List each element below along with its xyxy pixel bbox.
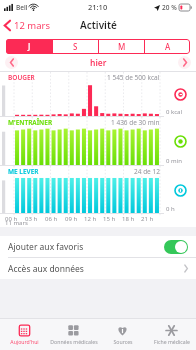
staticText: 15 h [103,215,116,223]
staticText: Accès aux données [8,263,184,275]
button[interactable]: Jour suivant [178,56,191,69]
button[interactable]: Accès aux données [0,258,196,279]
staticText: Bell [16,3,28,12]
staticText: 12 mars [14,19,51,32]
staticText: J [28,41,31,52]
staticText: 09 h [65,215,78,223]
staticText: 1 545 de 500 kcal [107,73,160,82]
button[interactable]: Objectif [174,135,187,148]
staticText: 20 % [162,3,177,12]
staticText: BOUGER [8,73,35,82]
staticText: A [165,41,171,52]
staticText: 06 h [45,215,58,223]
staticText: 0 min [166,157,182,165]
staticText: 0 h [166,205,175,213]
button[interactable]: Objectif [174,88,187,101]
button[interactable]: Sources [98,319,147,350]
staticText: 1 436 de 30 min [111,118,160,127]
staticText: 21 h [141,215,154,223]
staticText: Sources [113,338,133,345]
staticText: 03 h [25,215,38,223]
staticText: Ajouter aux favoris [8,241,164,253]
staticText: Activité [80,18,117,32]
button[interactable]: Jour précédent [5,56,18,69]
staticText: hier [90,57,107,69]
staticText: Aujourd'hui [10,338,39,345]
staticText: Fiche médicale [154,338,190,345]
button[interactable]: Données médicales [49,319,98,350]
staticText: S [73,41,78,52]
button[interactable]: J [6,39,52,54]
button[interactable]: Fiche médicale [147,319,196,350]
staticText: M'ENTRAÎNER [8,118,53,127]
staticText: ME LEVER [8,167,39,176]
button[interactable]: Aujourd'hui [0,319,49,350]
button[interactable]: S [53,39,98,54]
staticText: M [118,41,126,52]
button[interactable]: Ajouter aux favoris [0,236,196,257]
staticText: 00 h [5,215,18,223]
staticText: 12 h [84,215,97,223]
staticText: 18 h [122,215,135,223]
button[interactable]: 12 mars [0,14,57,36]
button[interactable]: Objectif [174,184,187,197]
staticText: 21:10 [88,2,108,12]
staticText: 24 de 12 [134,167,160,176]
staticText: Données médicales [50,338,98,345]
staticText: 11 mars [5,219,28,227]
staticText: 0 kcal [166,108,182,116]
button[interactable]: M [99,39,144,54]
button[interactable]: A [145,39,190,54]
